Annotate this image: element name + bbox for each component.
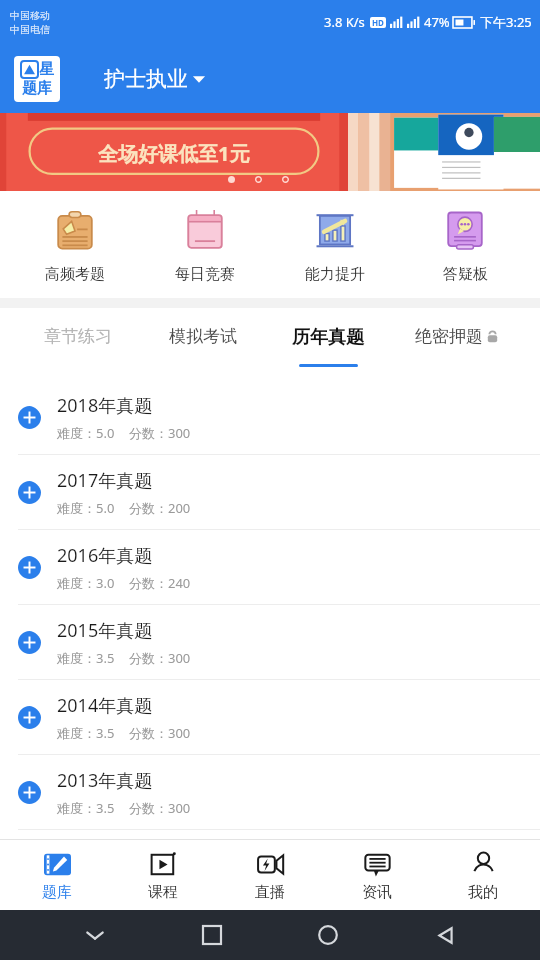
button[interactable]: 资讯 (327, 845, 427, 906)
staticText: 题库 (42, 883, 72, 902)
button[interactable]: 全场好课低至1元 广告 (0, 113, 540, 191)
staticText: 分数：200 (129, 499, 191, 517)
button[interactable]: 题库 (7, 845, 107, 906)
button[interactable]: Home (306, 913, 350, 957)
button[interactable]: 章节练习 (16, 326, 140, 347)
staticText: 直播 (255, 883, 285, 902)
button[interactable]: 直播 (220, 845, 320, 906)
button[interactable]: Back (423, 913, 467, 957)
button[interactable]: Recent apps (190, 913, 234, 957)
button[interactable]: 星题库 Logo (14, 56, 60, 102)
staticText: 难度：3.5 (57, 724, 115, 742)
staticText: 我的 (468, 883, 498, 902)
button[interactable]: Hide keyboard (73, 913, 117, 957)
staticText: 难度：5.0 (57, 424, 115, 442)
staticText: 答疑板 (443, 265, 488, 284)
button[interactable]: 课程 (113, 845, 213, 906)
button[interactable]: 2015年真题 (0, 605, 540, 680)
button[interactable]: 护士执业 (104, 66, 207, 92)
staticText: 高频考题 (45, 265, 105, 284)
staticText: 2017年真题 (57, 468, 153, 493)
staticText: 2013年真题 (57, 768, 153, 793)
staticText: 中国移动 (10, 9, 50, 22)
staticText: 2015年真题 (57, 618, 153, 643)
button[interactable]: 2017年真题 (0, 455, 540, 530)
staticText: 中国电信 (10, 23, 50, 36)
staticText: 分数：300 (129, 724, 191, 742)
staticText: 全场好课低至1元 (98, 140, 250, 167)
staticText: 2018年真题 (57, 393, 153, 418)
staticText: 课程 (148, 883, 178, 902)
button[interactable]: 我的 (433, 845, 533, 906)
staticText: 难度：5.0 (57, 499, 115, 517)
staticText: 3.8 K/s (324, 13, 365, 31)
button[interactable]: 2013年真题 (0, 755, 540, 830)
staticText: 绝密押题 (415, 326, 483, 347)
staticText: 模拟考试 (169, 326, 237, 347)
button[interactable]: 能力提升 (280, 205, 390, 286)
button[interactable]: 2016年真题 (0, 530, 540, 605)
staticText: 星 (39, 60, 54, 79)
staticText: 分数：300 (129, 799, 191, 817)
staticText: HD (372, 17, 384, 28)
button[interactable]: 高频考题 (20, 205, 130, 286)
staticText: 2016年真题 (57, 543, 153, 568)
staticText: 难度：3.0 (57, 574, 115, 592)
staticText: 章节练习 (44, 326, 112, 347)
staticText: 47% (424, 13, 450, 31)
staticText: 分数：240 (129, 574, 191, 592)
staticText: 分数：300 (129, 424, 191, 442)
staticText: 题库 (22, 79, 52, 98)
staticText: 每日竞赛 (175, 265, 235, 284)
staticText: 历年真题 (292, 326, 364, 349)
button[interactable]: 模拟考试 (140, 326, 265, 347)
staticText: 下午3:25 (480, 13, 532, 31)
staticText: 难度：3.5 (57, 799, 115, 817)
button[interactable]: 2018年真题 (0, 380, 540, 455)
staticText: 资讯 (362, 883, 392, 902)
staticText: 能力提升 (305, 265, 365, 284)
button[interactable]: 答疑板 (410, 205, 520, 286)
button[interactable]: 历年真题 (265, 326, 390, 367)
staticText: 难度：3.5 (57, 649, 115, 667)
button[interactable]: 绝密押题 (390, 326, 524, 347)
button[interactable]: 2014年真题 (0, 680, 540, 755)
staticText: 分数：300 (129, 649, 191, 667)
staticText: 护士执业 (104, 66, 188, 92)
button[interactable]: 每日竞赛 (150, 205, 260, 286)
staticText: 2014年真题 (57, 693, 153, 718)
